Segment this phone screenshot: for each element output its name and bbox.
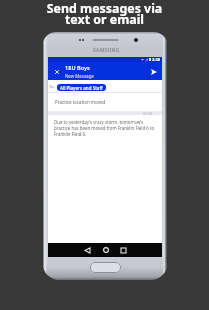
staticText: Practice location moved <box>55 99 106 105</box>
staticText: New Message <box>65 73 94 79</box>
button[interactable]: Close <box>51 66 62 77</box>
staticText: To: <box>49 84 55 90</box>
button[interactable]: Back <box>81 243 94 257</box>
button[interactable]: Home button <box>90 262 121 273</box>
staticText: 18U Boys <box>65 64 90 72</box>
staticText: Send messages via text or email <box>0 0 209 28</box>
staticText: 2:38 <box>152 57 160 62</box>
button[interactable]: All Players and Staff <box>57 84 106 91</box>
staticText: 0/140 <box>143 111 153 115</box>
button[interactable]: Send <box>148 66 159 77</box>
staticText: SAMSUNG <box>93 47 120 54</box>
staticText: Due to yesterday's crazy storm, tomorrow… <box>54 119 157 137</box>
button[interactable]: Recents <box>117 243 130 257</box>
button[interactable]: Home <box>99 243 112 257</box>
staticText: All Players and Staff <box>60 85 103 91</box>
